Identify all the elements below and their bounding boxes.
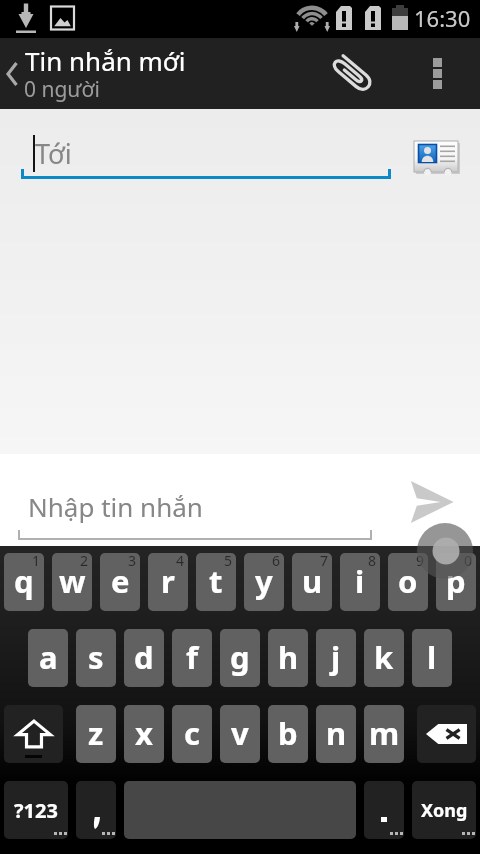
button[interactable]: 6 <box>244 553 284 611</box>
button[interactable]: g <box>220 629 260 687</box>
staticText: i <box>355 560 365 602</box>
button[interactable]: v <box>220 705 260 763</box>
staticText: n <box>326 712 347 754</box>
staticText: h <box>278 636 299 678</box>
button[interactable]: s <box>76 629 116 687</box>
button[interactable]: m <box>364 705 404 763</box>
staticText: 9 <box>416 553 425 570</box>
button[interactable]: Period <box>364 781 404 839</box>
staticText: ?123 <box>14 797 58 824</box>
staticText: d <box>134 636 154 678</box>
staticText: s <box>88 636 104 678</box>
button[interactable]: b <box>268 705 308 763</box>
button[interactable]: 1 <box>4 553 44 611</box>
button[interactable]: Done <box>412 781 476 839</box>
staticText: p <box>446 560 466 602</box>
staticText: 5 <box>224 553 233 570</box>
button[interactable]: Shift <box>4 705 63 763</box>
button[interactable]: Comma <box>76 781 116 839</box>
button[interactable]: l <box>412 629 452 687</box>
button[interactable]: More options <box>413 38 461 109</box>
staticText: u <box>302 560 323 602</box>
button[interactable]: 4 <box>148 553 188 611</box>
button[interactable]: c <box>172 705 212 763</box>
button[interactable]: a <box>28 629 68 687</box>
staticText: j <box>331 636 341 678</box>
staticText: v <box>231 712 249 754</box>
button[interactable]: h <box>268 629 308 687</box>
staticText: 3 <box>128 553 137 570</box>
button[interactable]: 3 <box>100 553 140 611</box>
button[interactable]: 7 <box>292 553 332 611</box>
staticText: 1 <box>32 553 41 570</box>
staticText: y <box>255 560 273 602</box>
button[interactable]: Attach file <box>327 38 379 109</box>
staticText: 16:30 <box>414 3 471 33</box>
staticText: z <box>88 712 104 754</box>
staticText: e <box>111 560 130 602</box>
staticText: m <box>369 712 400 754</box>
staticText: t <box>209 560 223 602</box>
staticText: k <box>374 636 394 678</box>
staticText: Xong <box>421 798 468 823</box>
staticText: a <box>39 636 58 678</box>
button[interactable]: z <box>76 705 116 763</box>
button[interactable]: 5 <box>196 553 236 611</box>
staticText: 6 <box>272 553 281 570</box>
button[interactable]: x <box>124 705 164 763</box>
staticText: x <box>135 712 153 754</box>
button[interactable]: Pick contact <box>406 135 462 177</box>
staticText: w <box>59 560 86 602</box>
staticText: f <box>186 636 198 678</box>
button[interactable]: k <box>364 629 404 687</box>
staticText: l <box>427 636 437 678</box>
staticText: 7 <box>320 553 329 570</box>
button[interactable]: Back <box>0 38 24 109</box>
staticText: g <box>230 636 250 678</box>
staticText: Tới <box>35 135 72 172</box>
button[interactable]: n <box>316 705 356 763</box>
button[interactable]: 8 <box>340 553 380 611</box>
button[interactable]: d <box>124 629 164 687</box>
staticText: c <box>184 712 200 754</box>
staticText: 2 <box>80 553 89 570</box>
staticText: q <box>14 560 34 602</box>
button[interactable]: 2 <box>52 553 92 611</box>
button[interactable]: Symbols <box>4 781 68 839</box>
staticText: b <box>278 712 298 754</box>
staticText: 8 <box>368 553 377 570</box>
button[interactable]: f <box>172 629 212 687</box>
staticText: r <box>161 560 175 602</box>
staticText: 0 người <box>24 75 100 104</box>
button[interactable]: 9 <box>388 553 428 611</box>
button[interactable]: Backspace <box>417 705 476 763</box>
staticText: Nhập tin nhắn <box>28 489 203 524</box>
staticText: o <box>398 560 418 602</box>
staticText: 0 <box>464 553 473 570</box>
button[interactable]: Send <box>406 476 458 528</box>
button[interactable]: j <box>316 629 356 687</box>
staticText: 4 <box>176 553 185 570</box>
button[interactable]: 0 <box>436 553 476 611</box>
staticText: Tin nhắn mới <box>25 43 186 78</box>
